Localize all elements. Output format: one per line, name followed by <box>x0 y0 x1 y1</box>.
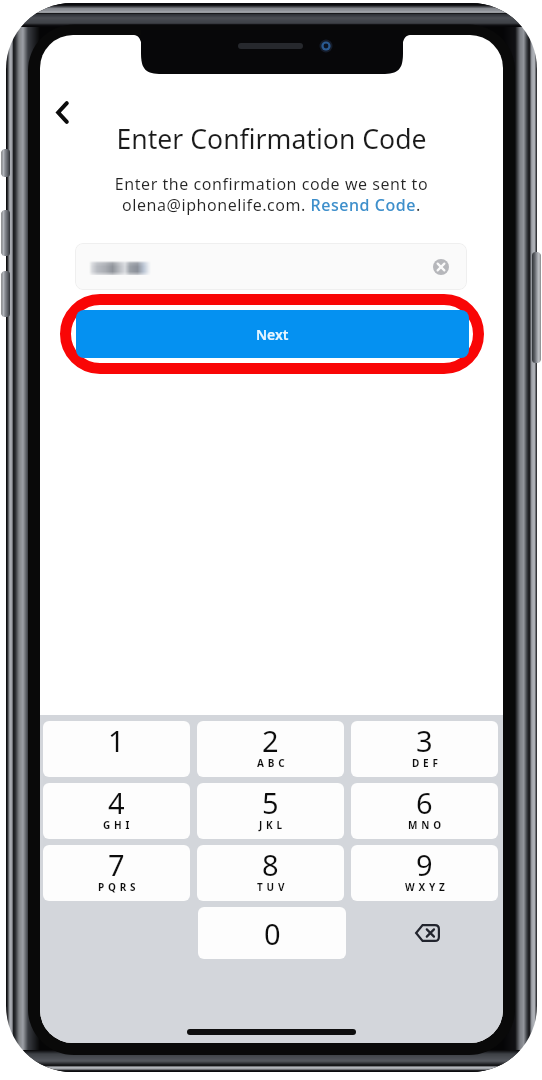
button[interactable]: 7 <box>43 845 190 901</box>
button[interactable]: 5 <box>197 783 344 839</box>
button[interactable]: Back <box>40 90 84 134</box>
staticText: GHI <box>103 818 134 832</box>
staticText: Enter Confirmation Code <box>40 121 503 157</box>
staticText: 4 <box>108 783 125 822</box>
button[interactable]: 1 <box>43 721 190 777</box>
staticText: 0 <box>264 914 281 953</box>
button[interactable]: Clear text <box>75 243 467 290</box>
staticText: 5 <box>262 783 279 822</box>
button[interactable]: 4 <box>43 783 190 839</box>
staticText: MNO <box>408 818 445 832</box>
staticText: 9 <box>416 845 433 884</box>
button[interactable]: Backspace <box>353 907 500 959</box>
staticText: 3 <box>416 721 433 760</box>
button[interactable]: 2 <box>197 721 344 777</box>
staticText: Next <box>256 325 289 344</box>
staticText: PQRS <box>98 880 140 894</box>
button[interactable]: Next <box>76 310 469 358</box>
button[interactable]: 3 <box>351 721 498 777</box>
staticText: 8 <box>262 845 279 884</box>
staticText: TUV <box>257 880 289 894</box>
staticText: JKL <box>259 818 286 832</box>
staticText: WXYZ <box>405 880 449 894</box>
button[interactable]: 9 <box>351 845 498 901</box>
staticText: 6 <box>416 783 433 822</box>
staticText: ABC <box>257 756 289 770</box>
button[interactable]: 6 <box>351 783 498 839</box>
staticText: 2 <box>262 721 279 760</box>
button[interactable]: Clear text <box>429 255 453 279</box>
staticText: 7 <box>108 845 125 884</box>
staticText: Enter the confirmation code we sent to o… <box>40 173 503 216</box>
staticText: 1 <box>108 721 125 760</box>
button[interactable]: 8 <box>197 845 344 901</box>
button[interactable]: 0 <box>198 907 346 959</box>
staticText: DEF <box>412 756 442 770</box>
